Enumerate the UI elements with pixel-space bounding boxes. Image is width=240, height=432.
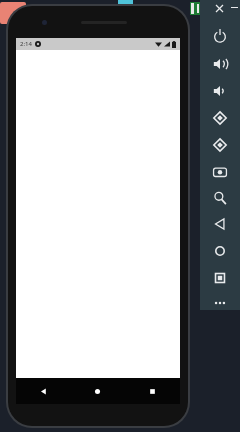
button[interactable]: Screenshot — [208, 160, 232, 184]
button[interactable]: Rotate right — [208, 133, 232, 157]
button[interactable]: Minimize — [228, 1, 240, 13]
button[interactable]: Home — [70, 378, 125, 404]
button[interactable]: Recents — [125, 378, 180, 404]
button[interactable]: Overview — [208, 266, 232, 290]
button[interactable]: Zoom — [208, 186, 232, 210]
button[interactable]: Back — [16, 378, 70, 404]
button[interactable]: Back — [208, 212, 232, 236]
button[interactable]: Volume up — [208, 52, 232, 76]
button[interactable]: Close — [212, 1, 226, 15]
button[interactable]: Rotate left — [208, 106, 232, 130]
staticText: olutely r — [204, 299, 232, 309]
button[interactable]: More — [208, 291, 232, 315]
button[interactable]: Volume down — [208, 79, 232, 103]
button[interactable]: Home — [208, 239, 232, 263]
button[interactable]: Power — [208, 24, 232, 48]
staticText: 2:14 — [20, 40, 32, 48]
